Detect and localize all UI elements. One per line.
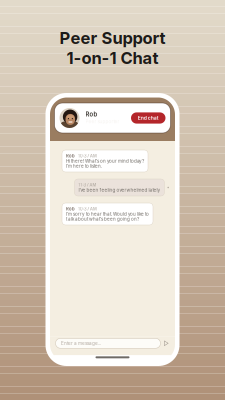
button[interactable]: Enter a message...	[55, 338, 160, 348]
button[interactable]: Send	[164, 341, 168, 346]
staticText: 10:37 AM	[78, 206, 97, 211]
staticText: I'm sorry to hear that. Would you like t…	[66, 211, 149, 217]
staticText: I've been feeling overwhelmed lately.	[78, 187, 160, 193]
staticText: talk about what's been going on?	[66, 216, 139, 222]
staticText: Enter a message...	[61, 340, 101, 346]
staticText: Rob	[85, 111, 97, 118]
staticText: Hi there! What's on your mind today?	[66, 158, 144, 164]
staticText: End chat	[138, 115, 159, 121]
staticText: Peer Support	[59, 28, 165, 48]
staticText: 1-on-1 Chat	[66, 48, 158, 68]
staticText: Rob	[66, 206, 75, 211]
button[interactable]: End chat	[131, 112, 165, 124]
staticText: 11:37 AM	[78, 182, 96, 187]
staticText: I'm here to listen.	[66, 163, 102, 169]
staticText: 10:37 AM	[78, 153, 97, 158]
staticText: Rob	[66, 153, 75, 158]
